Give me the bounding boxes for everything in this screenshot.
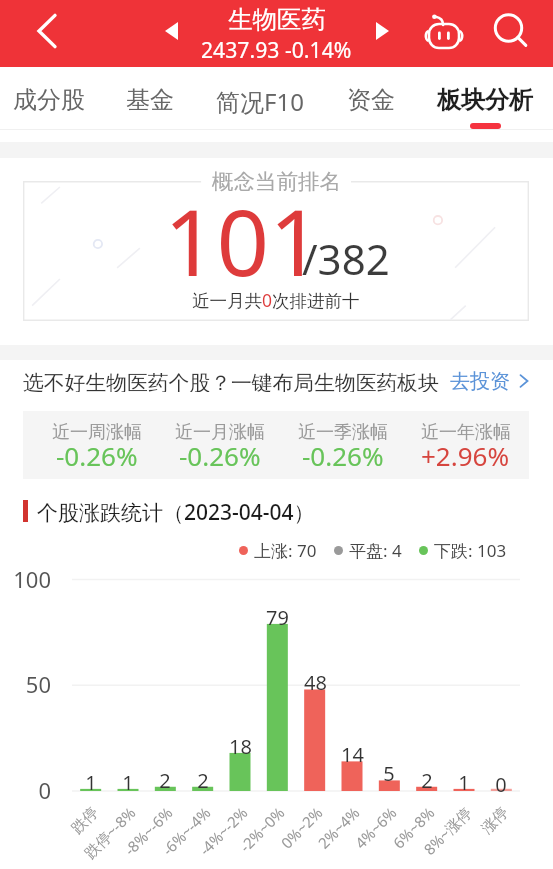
staticText: 近一月涨幅	[175, 421, 265, 444]
button[interactable]: 近一月涨幅	[158, 411, 281, 479]
staticText: -0.26%	[302, 438, 384, 473]
staticText: 成分股	[13, 85, 85, 115]
staticText: 4%~6%	[316, 803, 400, 869]
button[interactable]: Back	[27, 11, 67, 51]
staticText: -8%~-6%	[92, 803, 176, 869]
staticText: 100	[0, 564, 51, 594]
staticText: 近一月共0次排进前十	[192, 288, 360, 312]
button[interactable]: 资金	[316, 67, 426, 130]
staticText: /382	[302, 230, 390, 287]
button[interactable]: 选不好生物医药个股？一键布局生物医药板块	[16, 364, 446, 398]
button[interactable]: 平盘: 4	[334, 539, 402, 562]
staticText: 79	[266, 604, 289, 631]
staticText: 近一季涨幅	[298, 421, 388, 444]
staticText: -6%~-4%	[130, 803, 214, 869]
staticText: 1	[85, 769, 97, 796]
staticText: 2437.93 -0.14%	[201, 35, 352, 64]
button[interactable]: 近一周涨幅	[35, 411, 158, 479]
button[interactable]: 上涨: 70	[239, 539, 317, 562]
staticText: 资金	[347, 85, 395, 115]
button[interactable]: 近一年涨幅	[404, 411, 527, 479]
staticText: -0.26%	[179, 438, 261, 473]
button[interactable]: 下跌: 103	[419, 539, 507, 562]
staticText: 概念当前排名	[212, 168, 341, 195]
staticText: 下跌: 103	[434, 539, 507, 562]
staticText: 近一周涨幅	[52, 421, 142, 444]
staticText: 0	[0, 775, 51, 805]
staticText: +2.96%	[421, 438, 510, 473]
staticText: 简况F10	[216, 85, 304, 118]
button[interactable]: 去投资	[450, 364, 529, 398]
staticText: 选不好生物医药个股？一键布局生物医药板块	[23, 370, 439, 392]
staticText: 0%~2%	[242, 803, 326, 869]
staticText: 生物医药	[228, 4, 326, 35]
staticText: 涨停	[428, 803, 512, 869]
button[interactable]: Search	[489, 11, 529, 51]
staticText: -4%~-2%	[167, 803, 251, 869]
button[interactable]: Previous sector	[151, 11, 191, 51]
staticText: 2%~4%	[279, 803, 363, 869]
staticText: 50	[0, 669, 51, 699]
staticText: 近一年涨幅	[421, 421, 511, 444]
button[interactable]: AI assistant	[426, 17, 464, 51]
staticText: 2	[421, 767, 433, 794]
staticText: 跌停	[18, 803, 102, 869]
staticText: -0.26%	[56, 438, 138, 473]
button[interactable]: 成分股	[0, 67, 104, 130]
staticText: 去投资	[450, 369, 510, 394]
button[interactable]: 基金	[95, 67, 205, 130]
staticText: 跌停~-8%	[55, 803, 139, 869]
staticText: 平盘: 4	[349, 539, 402, 562]
staticText: 101	[164, 178, 322, 303]
staticText: 5	[383, 760, 395, 787]
staticText: 板块分析	[437, 85, 533, 115]
staticText: 6%~8%	[354, 803, 438, 869]
staticText: 个股涨跌统计（2023-04-04）	[37, 498, 315, 524]
staticText: 48	[304, 669, 327, 696]
staticText: 上涨: 70	[254, 539, 317, 562]
staticText: 1	[122, 769, 134, 796]
staticText: 1	[458, 769, 470, 796]
button[interactable]: 简况F10	[205, 67, 315, 130]
staticText: 0	[495, 771, 507, 798]
button[interactable]: 板块分析	[430, 67, 540, 130]
button[interactable]: 近一季涨幅	[281, 411, 404, 479]
staticText: 2	[197, 767, 209, 794]
staticText: 14	[341, 741, 364, 768]
staticText: 8%~涨停	[391, 803, 475, 869]
staticText: 18	[229, 733, 252, 760]
staticText: -2%~0%	[204, 803, 288, 869]
button[interactable]: Next sector	[362, 11, 402, 51]
staticText: 2	[159, 767, 171, 794]
staticText: 基金	[126, 85, 174, 115]
